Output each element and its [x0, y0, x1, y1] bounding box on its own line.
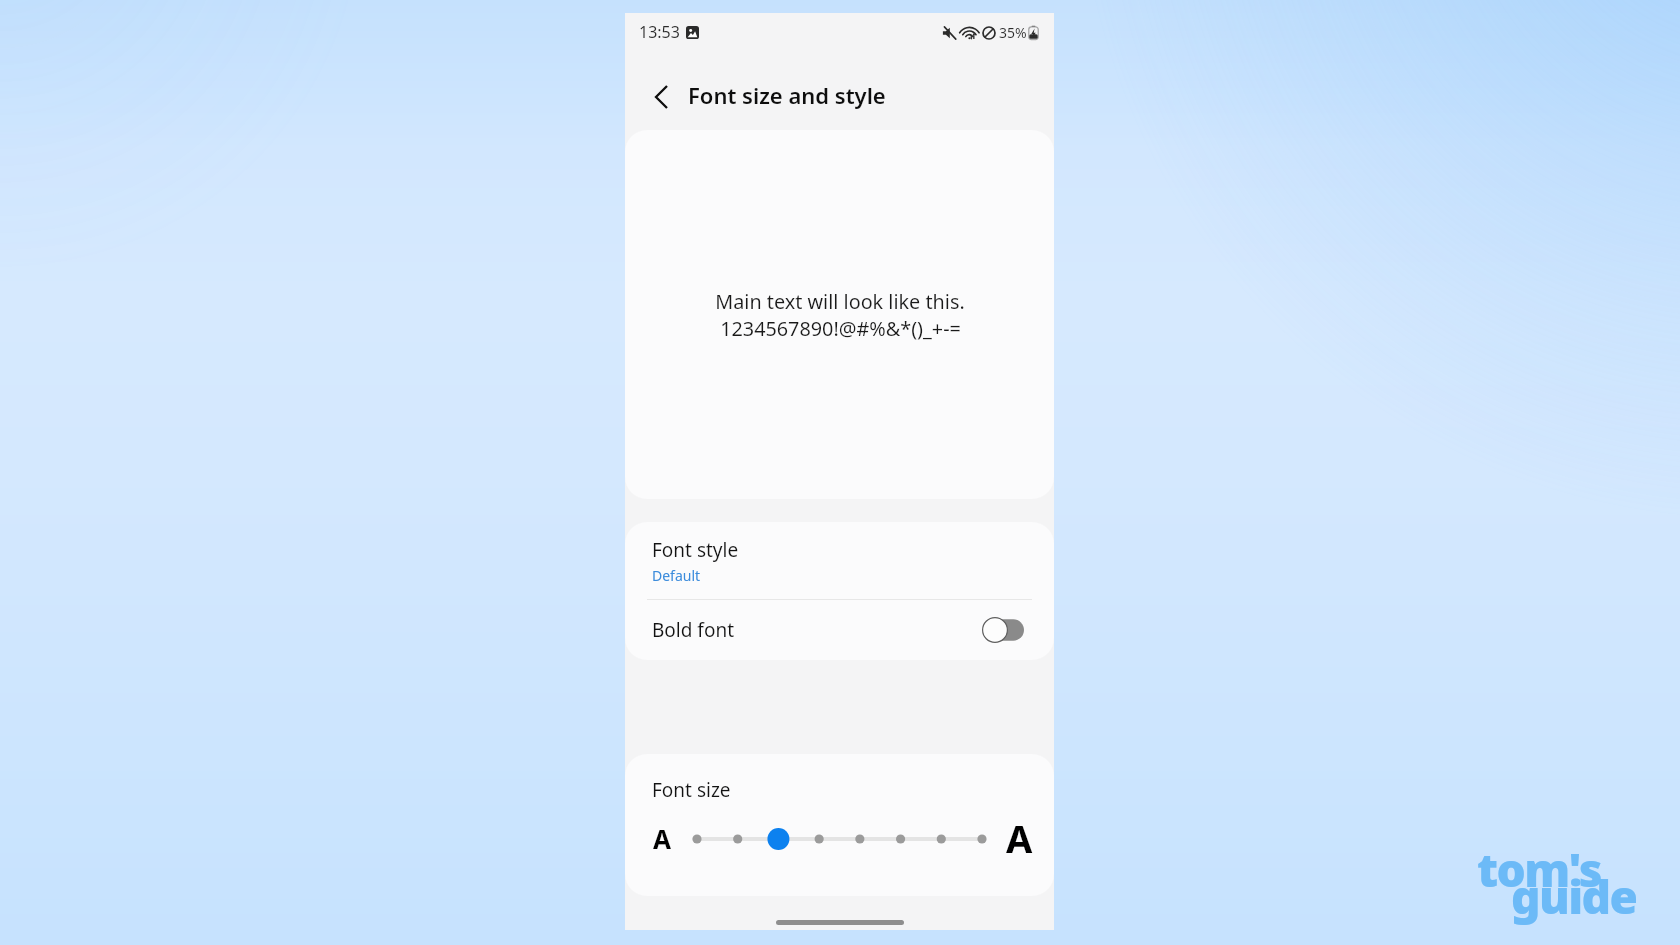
staticText: Main text will look like this. [715, 288, 965, 315]
staticText: tom's [1477, 838, 1601, 901]
staticText: Bold font [652, 617, 735, 643]
staticText: Font size and style [688, 80, 886, 110]
staticText: 13:53 [639, 21, 680, 43]
button[interactable]: Font size slider [625, 820, 1054, 858]
button[interactable]: Bold font off [982, 617, 1024, 643]
staticText: 1234567890!@#%&*()_+-= [720, 315, 961, 342]
staticText: A [1006, 812, 1033, 864]
button[interactable]: Font style [625, 522, 1054, 599]
staticText: Font size [652, 777, 731, 803]
staticText: Default [652, 566, 701, 585]
staticText: 35% [999, 23, 1027, 42]
button[interactable]: Back [646, 81, 678, 113]
staticText: guide [1511, 865, 1637, 928]
staticText: A [653, 821, 671, 856]
staticText: Font style [652, 537, 739, 563]
button[interactable]: Bold font [625, 600, 1054, 660]
